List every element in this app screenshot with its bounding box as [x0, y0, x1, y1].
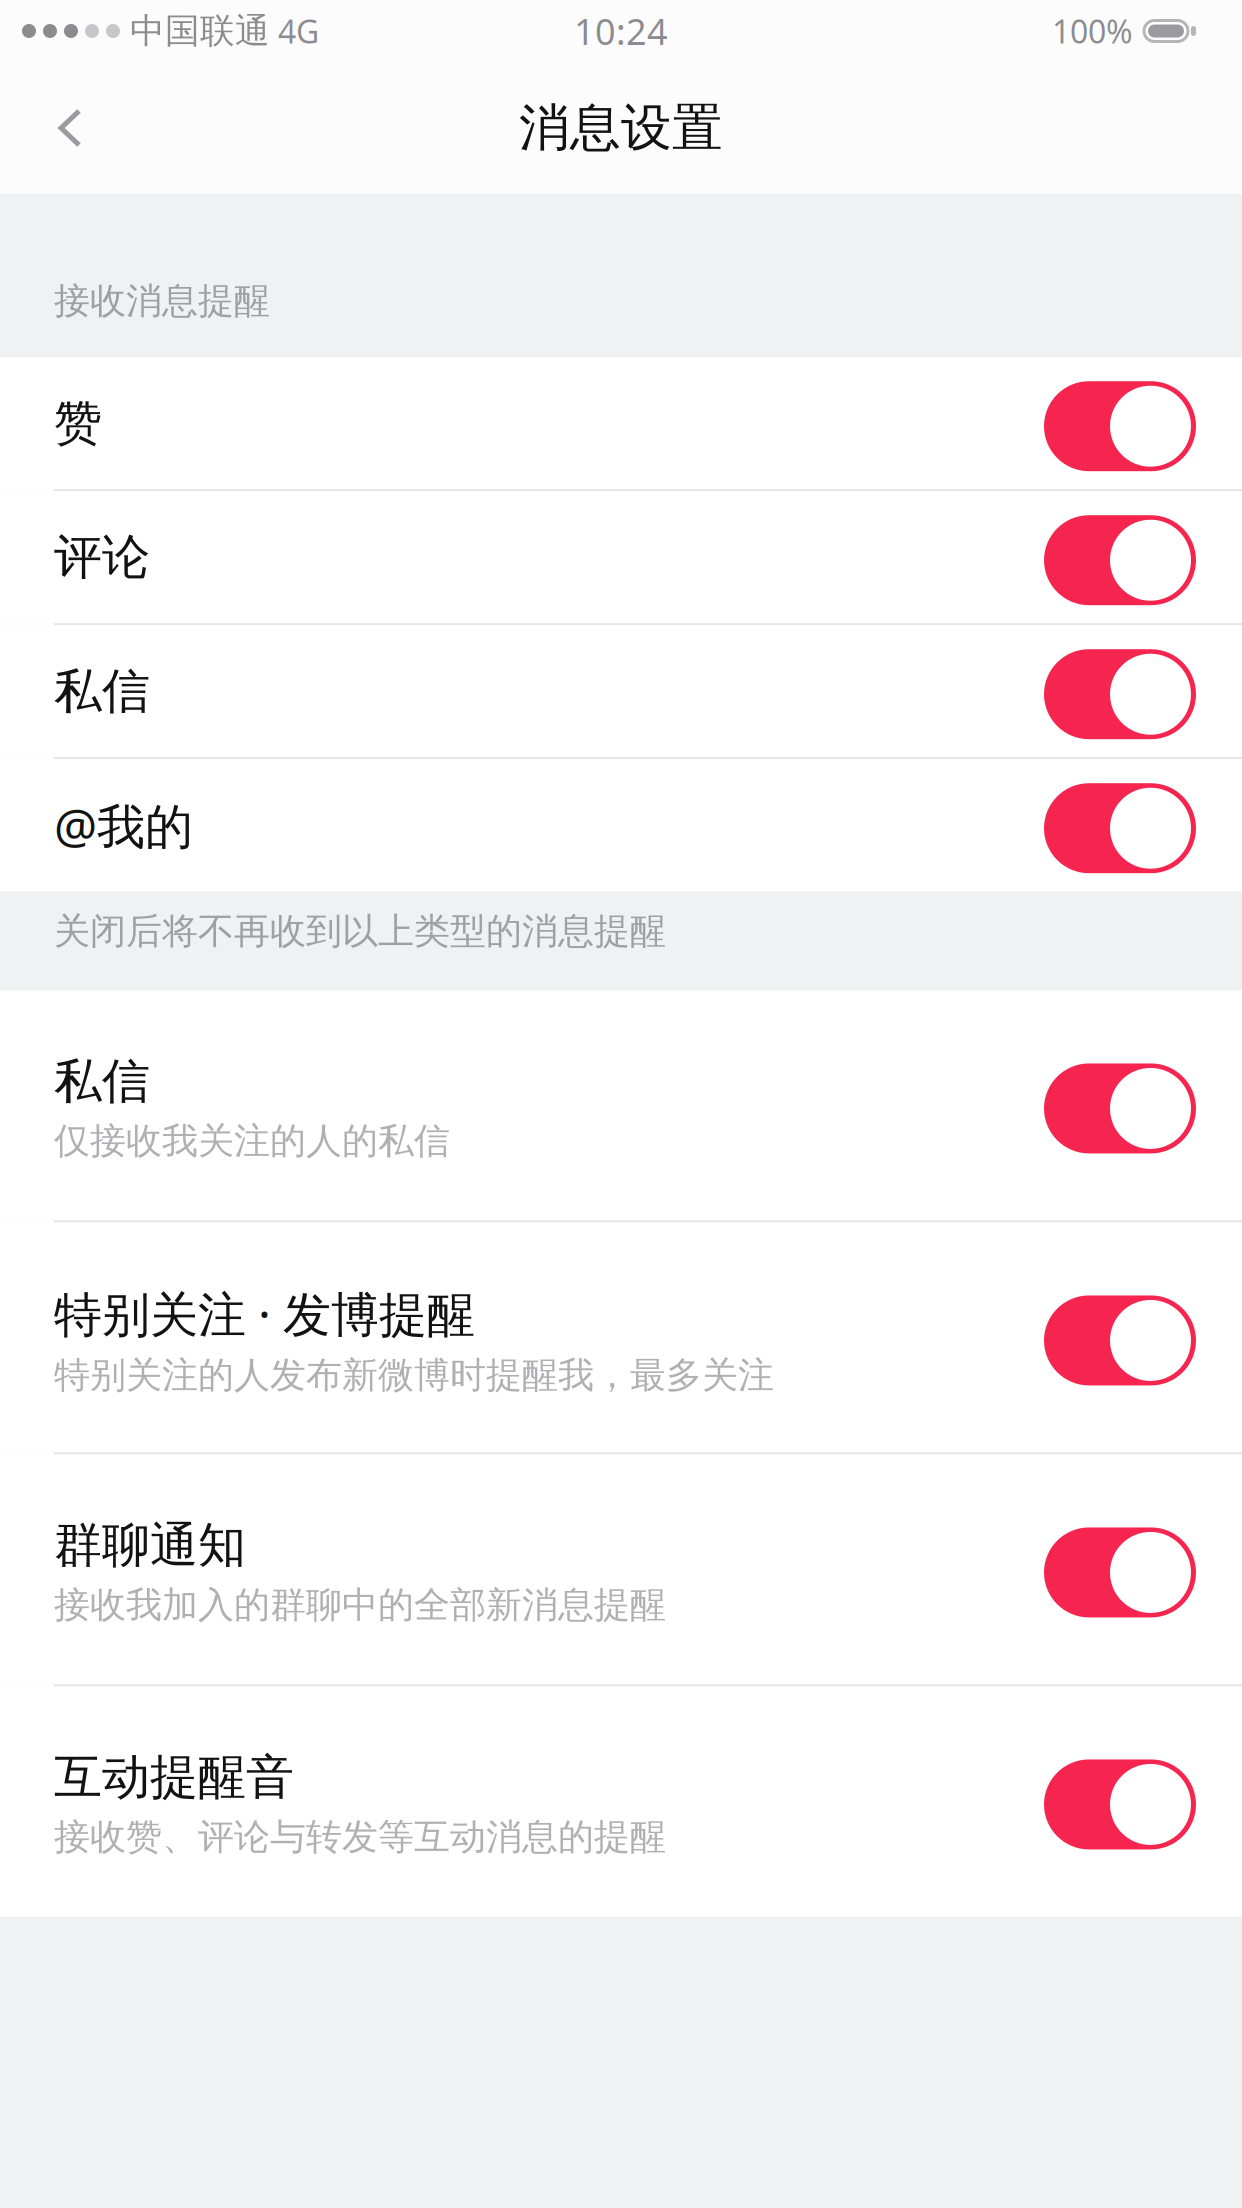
button[interactable]: 返回 [0, 69, 118, 187]
staticText: 私信 [54, 1052, 150, 1111]
staticText: 私信 [54, 662, 150, 721]
staticText: 4G [270, 10, 319, 52]
staticText: 接收消息提醒 [54, 279, 270, 323]
staticText: 关闭后将不再收到以上类型的消息提醒 [54, 909, 666, 953]
staticText: 接收我加入的群聊中的全部新消息提醒 [54, 1583, 666, 1627]
button[interactable]: @我的 [0, 759, 1242, 891]
staticText: 100% [1052, 10, 1133, 52]
button[interactable]: 评论 [0, 491, 1242, 623]
staticText: 特别关注 · 发博提醒 [54, 1281, 475, 1345]
button[interactable]: 私信 [0, 625, 1242, 757]
staticText: 消息设置 [519, 97, 723, 159]
staticText: 特别关注的人发布新微博时提醒我，最多关注 [54, 1353, 774, 1397]
staticText: 仅接收我关注的人的私信 [54, 1119, 450, 1163]
staticText: 评论 [54, 528, 150, 587]
button[interactable]: 私信 [0, 990, 1242, 1220]
staticText: 10:24 [574, 7, 668, 55]
staticText: 赞 [54, 394, 102, 453]
button[interactable]: 群聊通知 [0, 1454, 1242, 1684]
staticText: 群聊通知 [54, 1516, 246, 1575]
staticText: 互动提醒音 [54, 1748, 294, 1807]
staticText: 中国联通 [120, 10, 270, 52]
staticText: 接收赞、评论与转发等互动消息的提醒 [54, 1815, 666, 1859]
button[interactable]: 互动提醒音 [0, 1686, 1242, 1916]
button[interactable]: 赞 [0, 357, 1242, 489]
button[interactable]: 特别关注 · 发博提醒 [0, 1222, 1242, 1452]
staticText: @我的 [54, 793, 193, 857]
